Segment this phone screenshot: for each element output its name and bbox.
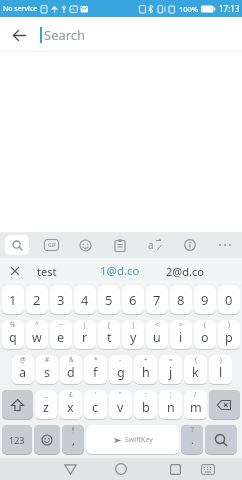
staticText: p (225, 329, 233, 346)
staticText: < (155, 320, 159, 329)
staticText: n (167, 399, 175, 416)
staticText: 2 (33, 291, 41, 309)
button[interactable]: ) (209, 355, 232, 384)
button[interactable]: ] (122, 320, 144, 349)
button[interactable]: 5 (98, 285, 120, 314)
button[interactable]: £ (59, 390, 82, 419)
button[interactable]: ^ (26, 320, 48, 349)
staticText: f (93, 364, 98, 381)
button[interactable]: - (109, 355, 132, 384)
staticText: r (82, 329, 88, 346)
button[interactable]: , (62, 425, 84, 454)
button[interactable]: + (134, 355, 157, 384)
button[interactable] (209, 390, 240, 419)
button[interactable]: 6 (122, 285, 144, 314)
button[interactable] (68, 232, 102, 258)
button[interactable]: _ (35, 390, 57, 419)
button[interactable]: < (146, 320, 168, 349)
staticText: 1@d.co (100, 263, 140, 279)
button[interactable]: @ (12, 355, 34, 384)
button[interactable]: 4 (74, 285, 96, 314)
staticText: 4 (81, 291, 89, 309)
staticText: q (9, 329, 17, 346)
staticText: > (179, 320, 183, 329)
button[interactable] (205, 425, 237, 454)
staticText: t (107, 329, 112, 346)
staticText: = (169, 355, 173, 364)
button[interactable]: test (25, 258, 69, 284)
button[interactable]: 0 (218, 285, 240, 314)
button[interactable] (8, 24, 30, 46)
button[interactable]: & (60, 355, 82, 384)
button[interactable]: | (74, 320, 96, 349)
button[interactable] (6, 262, 24, 280)
staticText: _ (45, 390, 48, 399)
staticText: 123 (9, 434, 25, 446)
staticText: [ (108, 320, 111, 329)
staticText: ~ (59, 320, 63, 329)
button[interactable]: ; (159, 390, 182, 419)
button[interactable]: GIF (34, 232, 68, 258)
staticText: ? (191, 425, 194, 434)
button[interactable]: ' (84, 390, 107, 419)
staticText: ] (132, 320, 135, 329)
button[interactable] (58, 458, 82, 480)
button[interactable]: " (109, 390, 132, 419)
button[interactable]: 2 (26, 285, 48, 314)
button[interactable] (163, 458, 187, 480)
staticText: u (153, 329, 161, 346)
button[interactable] (102, 232, 137, 258)
button[interactable]: ( (184, 355, 207, 384)
button[interactable]: ~ (50, 320, 72, 349)
staticText: : (145, 390, 147, 399)
button[interactable] (172, 232, 207, 258)
staticText: m (190, 399, 202, 416)
button[interactable]: SwiftKey (86, 425, 179, 454)
button[interactable]: 8 (170, 285, 192, 314)
button[interactable] (2, 390, 33, 419)
button[interactable]: 7 (146, 285, 168, 314)
staticText: w (32, 329, 42, 346)
button[interactable]: ( (194, 320, 216, 349)
button[interactable]: # (36, 355, 58, 384)
staticText: ) (220, 355, 222, 364)
staticText: c (92, 399, 99, 416)
staticText: ( (204, 320, 206, 329)
button[interactable] (207, 232, 242, 258)
staticText: ( (195, 355, 197, 364)
button[interactable]: ) (218, 320, 240, 349)
staticText: 17:13 (219, 3, 240, 14)
button[interactable] (0, 232, 34, 258)
button[interactable]: = (159, 355, 182, 384)
staticText: @ (20, 355, 26, 364)
button[interactable]: ? (181, 425, 203, 454)
button[interactable]: 3 (50, 285, 72, 314)
staticText: % (10, 320, 16, 329)
staticText: b (142, 399, 150, 416)
button[interactable]: : (134, 390, 157, 419)
button[interactable] (34, 425, 60, 454)
button[interactable]: 9 (194, 285, 216, 314)
staticText: ^ (35, 320, 39, 329)
staticText: + (144, 355, 148, 364)
button[interactable]: 1 (2, 285, 24, 314)
button[interactable]: > (170, 320, 192, 349)
staticText: k (192, 364, 199, 381)
button[interactable]: 1@d.co (88, 258, 152, 284)
staticText: 0 (225, 291, 233, 309)
staticText: # (45, 355, 50, 364)
button[interactable]: * (84, 355, 107, 384)
button[interactable]: % (2, 320, 24, 349)
button[interactable] (196, 458, 220, 480)
staticText: . (191, 432, 194, 447)
button[interactable]: / (184, 390, 207, 419)
staticText: No service (3, 4, 38, 14)
button[interactable]: 2@d.co (154, 258, 216, 284)
button[interactable] (109, 458, 133, 480)
button[interactable]: 123 (2, 425, 32, 454)
staticText: ' (95, 390, 97, 399)
staticText: 3 (57, 291, 65, 309)
button[interactable]: a (137, 232, 172, 258)
staticText: d (67, 364, 75, 381)
button[interactable]: [ (98, 320, 120, 349)
